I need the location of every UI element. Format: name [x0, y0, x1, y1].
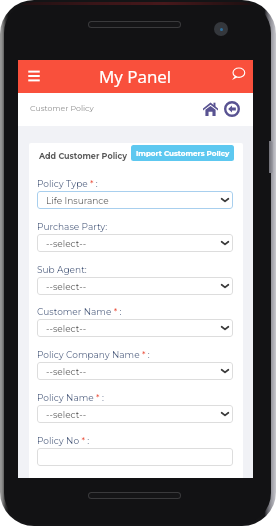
- button[interactable]: Add Customer Policy: [39, 147, 127, 164]
- staticText: Policy Type * :: [37, 178, 98, 189]
- staticText: --select--: [46, 409, 87, 420]
- button[interactable]: Menu: [26, 68, 42, 84]
- staticText: Purchase Party:: [37, 221, 108, 232]
- staticText: Customer Name * :: [37, 306, 122, 317]
- staticText: Policy Name * :: [37, 392, 104, 403]
- staticText: Customer Policy: [30, 103, 94, 113]
- staticText: --select--: [46, 366, 87, 377]
- button[interactable]: --select--: [37, 362, 233, 380]
- staticText: Import Customers Policy: [136, 149, 230, 158]
- button[interactable]: Life Insurance: [37, 191, 233, 209]
- button[interactable]: Chat: [232, 68, 245, 80]
- staticText: Policy No * :: [37, 435, 90, 446]
- staticText: Policy Company Name * :: [37, 349, 150, 360]
- staticText: Life Insurance: [46, 195, 109, 206]
- staticText: --select--: [46, 281, 87, 292]
- staticText: My Panel: [99, 65, 172, 88]
- button[interactable]: --select--: [37, 234, 233, 252]
- button[interactable]: --select--: [37, 319, 233, 337]
- staticText: --select--: [46, 323, 87, 334]
- button[interactable]: [37, 448, 233, 466]
- button[interactable]: --select--: [37, 405, 233, 423]
- button[interactable]: Home: [203, 102, 218, 116]
- staticText: Add Customer Policy: [39, 151, 127, 161]
- staticText: --select--: [46, 238, 87, 249]
- button[interactable]: Import Customers Policy: [131, 145, 234, 161]
- button[interactable]: --select--: [37, 277, 233, 295]
- button[interactable]: Back: [224, 101, 240, 117]
- staticText: Sub Agent:: [37, 264, 87, 275]
